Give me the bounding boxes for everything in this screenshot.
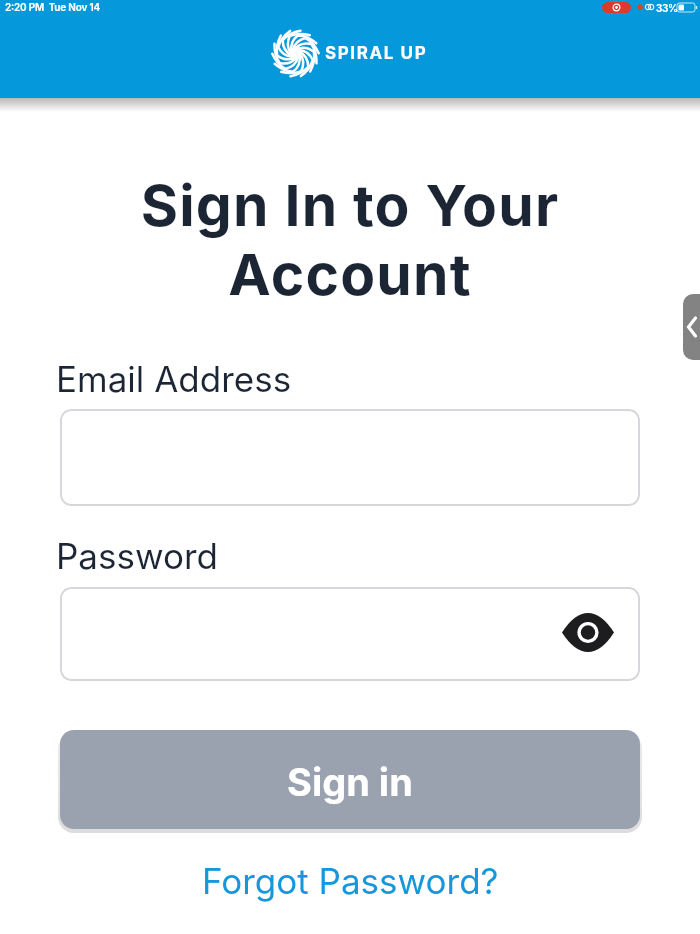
staticText: 2:20 PM Tue Nov 14 bbox=[5, 1, 100, 13]
staticText: Sign In to Your Account bbox=[0, 171, 700, 309]
staticText: Sign in bbox=[287, 759, 413, 805]
staticText: Password bbox=[56, 535, 218, 577]
button[interactable]: Forgot Password? bbox=[202, 860, 499, 902]
staticText: Email Address bbox=[56, 358, 292, 400]
button[interactable] bbox=[562, 615, 614, 650]
button[interactable] bbox=[60, 587, 640, 681]
button[interactable] bbox=[683, 294, 700, 360]
staticText: 33% bbox=[656, 2, 678, 14]
button[interactable] bbox=[60, 409, 640, 506]
staticText: SPIRAL UP bbox=[325, 43, 428, 64]
button[interactable]: Sign in bbox=[60, 730, 640, 829]
